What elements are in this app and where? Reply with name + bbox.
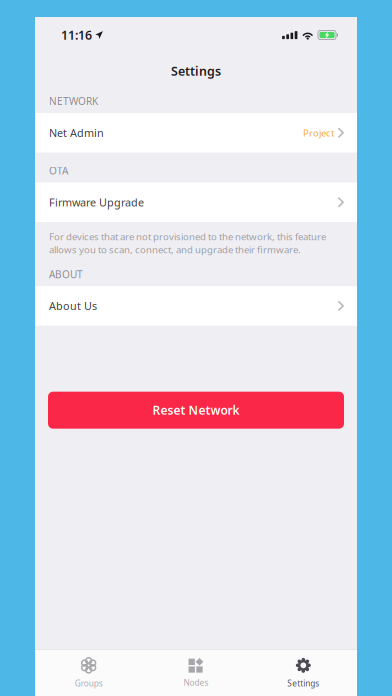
- staticText: Settings: [171, 63, 221, 79]
- button[interactable]: About Us: [35, 286, 357, 326]
- button[interactable]: Nodes: [142, 651, 250, 695]
- staticText: NETWORK: [49, 94, 98, 108]
- button[interactable]: Settings: [250, 650, 357, 696]
- staticText: About Us: [49, 298, 97, 313]
- staticText: Nodes: [183, 677, 208, 688]
- button[interactable]: Groups: [35, 650, 142, 696]
- staticText: Settings: [287, 678, 319, 689]
- staticText: 11:16: [61, 27, 92, 43]
- button[interactable]: Net Admin: [35, 113, 357, 152]
- staticText: For devices that are not provisioned to …: [49, 230, 326, 256]
- staticText: Firmware Upgrade: [49, 195, 144, 210]
- staticText: Reset Network: [152, 402, 239, 418]
- staticText: OTA: [49, 164, 68, 177]
- staticText: Project: [303, 126, 334, 139]
- button[interactable]: Reset Network: [48, 392, 344, 429]
- button[interactable]: Firmware Upgrade: [35, 182, 357, 222]
- staticText: ABOUT: [49, 267, 83, 281]
- staticText: Groups: [75, 677, 103, 689]
- staticText: Net Admin: [49, 125, 104, 140]
